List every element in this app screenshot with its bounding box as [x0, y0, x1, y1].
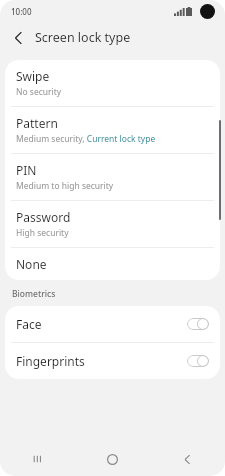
staticText: High security — [16, 227, 69, 239]
button[interactable]: PIN — [5, 154, 220, 200]
staticText: Medium security, Current lock type — [16, 133, 156, 145]
button[interactable]: Back — [150, 442, 225, 476]
button[interactable]: None — [5, 248, 220, 280]
button[interactable]: Fingerprints — [5, 343, 220, 379]
button[interactable]: Recents — [0, 442, 75, 476]
button[interactable]: Pattern — [5, 107, 220, 153]
button[interactable]: Swipe — [5, 60, 220, 106]
staticText: Screen lock type — [35, 29, 131, 46]
staticText: Swipe — [16, 68, 50, 84]
staticText: None — [16, 256, 47, 272]
staticText: Face — [16, 316, 187, 332]
staticText: PIN — [16, 162, 37, 178]
staticText: Fingerprints — [16, 353, 187, 369]
staticText: 10:00 — [11, 6, 32, 17]
button[interactable]: Face — [5, 306, 220, 342]
button[interactable]: Home — [75, 442, 150, 476]
staticText: Medium to high security — [16, 180, 114, 192]
staticText: No security — [16, 86, 62, 98]
staticText: Password — [16, 209, 71, 225]
staticText: Pattern — [16, 115, 58, 131]
button[interactable]: Back — [4, 24, 32, 52]
button[interactable]: Password — [5, 201, 220, 247]
staticText: Biometrics — [12, 288, 56, 300]
